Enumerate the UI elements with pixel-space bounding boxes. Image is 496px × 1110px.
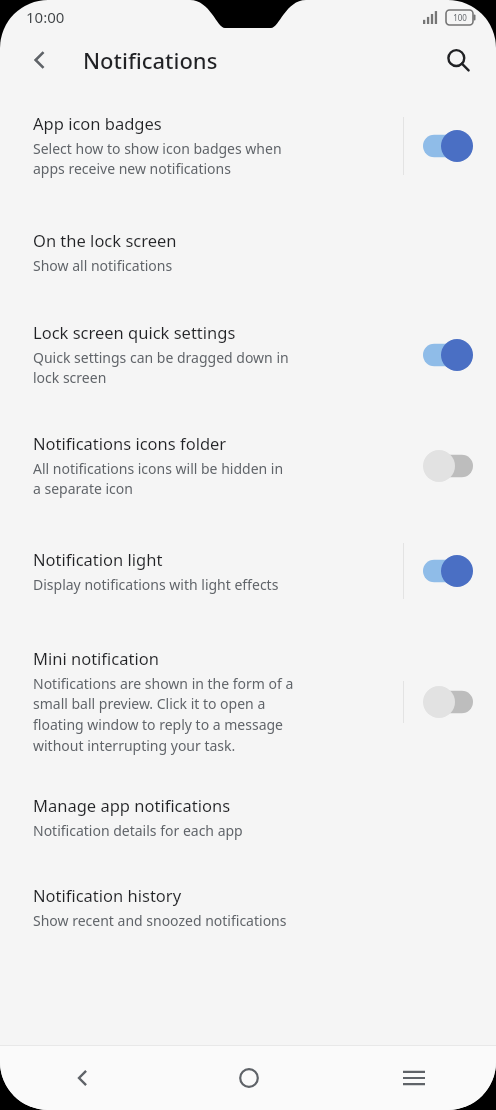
staticText: Show all notifications — [33, 256, 343, 275]
staticText: Notification light — [33, 548, 163, 570]
button[interactable]: Toggle on — [420, 554, 476, 588]
staticText: Notifications are shown in the form of a… — [33, 674, 296, 756]
staticText: Display notifications with light effects — [33, 575, 292, 594]
staticText: Notifications icons folder — [33, 432, 227, 454]
staticText: Select how to show icon badges when apps… — [33, 139, 292, 179]
button[interactable]: Toggle on — [420, 338, 476, 372]
button[interactable]: Toggle off — [420, 685, 476, 719]
staticText: 10:00 — [26, 7, 65, 27]
staticText: 100 — [453, 12, 467, 23]
staticText: Notification history — [33, 884, 182, 906]
staticText: App icon badges — [33, 112, 162, 134]
button[interactable]: Mini notification — [0, 647, 496, 756]
button[interactable]: Search — [434, 36, 482, 84]
button[interactable]: Notification light — [0, 543, 496, 599]
staticText: Notifications — [83, 45, 218, 75]
staticText: All notifications icons will be hidden i… — [33, 459, 292, 499]
staticText: Notification details for each app — [33, 821, 343, 840]
button[interactable]: App icon badges — [0, 112, 496, 179]
button[interactable]: Toggle on — [420, 129, 476, 163]
button[interactable]: Back — [0, 1046, 166, 1110]
button[interactable]: Notifications icons folder — [0, 432, 496, 499]
button[interactable]: Lock screen quick settings — [0, 321, 496, 388]
button[interactable]: Notification history — [0, 884, 496, 930]
button[interactable]: Toggle off — [420, 449, 476, 483]
staticText: Mini notification — [33, 647, 159, 669]
button[interactable]: On the lock screen — [0, 229, 496, 275]
button[interactable]: Home — [166, 1046, 331, 1110]
staticText: On the lock screen — [33, 229, 177, 251]
staticText: Lock screen quick settings — [33, 321, 236, 343]
button[interactable]: Manage app notifications — [0, 794, 496, 840]
button[interactable]: Recent apps — [331, 1046, 496, 1110]
staticText: Manage app notifications — [33, 794, 231, 816]
button[interactable]: Back — [16, 36, 64, 84]
staticText: Quick settings can be dragged down in lo… — [33, 348, 292, 388]
staticText: Show recent and snoozed notifications — [33, 911, 343, 930]
